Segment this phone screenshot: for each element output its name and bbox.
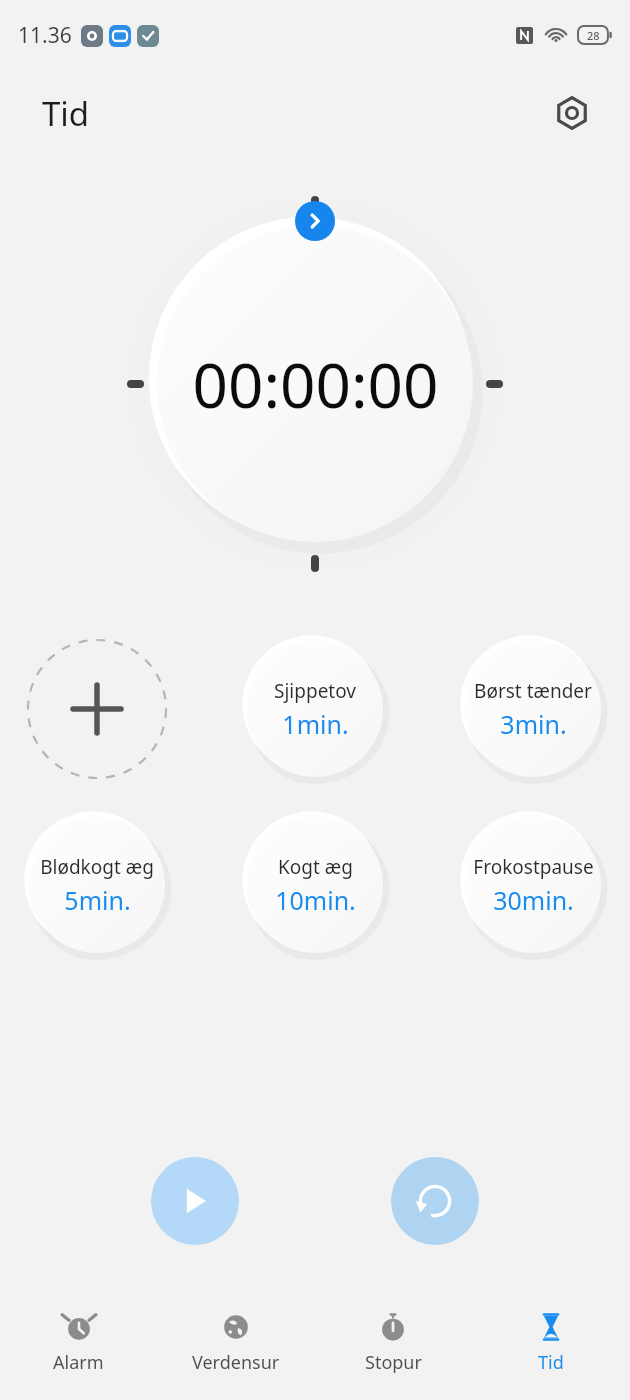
button[interactable]: Reset: [391, 1157, 479, 1245]
button[interactable]: Start: [151, 1157, 239, 1245]
button[interactable]: Børst tænder: [458, 634, 608, 784]
button[interactable]: Blødkogt æg: [22, 810, 172, 960]
button[interactable]: Frokostpause: [458, 810, 608, 960]
button[interactable]: Settings: [548, 89, 596, 137]
staticText: Kogt æg: [278, 854, 353, 880]
staticText: 00:00:00: [192, 342, 439, 426]
button[interactable]: Adjust timer: [295, 201, 335, 241]
staticText: Tid: [538, 1350, 564, 1375]
staticText: 5min.: [64, 883, 131, 917]
staticText: Stopur: [365, 1350, 422, 1375]
staticText: Sjippetov: [274, 678, 356, 704]
button[interactable]: Tid: [472, 1295, 630, 1375]
staticText: Blødkogt æg: [40, 854, 154, 880]
button[interactable]: Verdensur: [157, 1295, 314, 1375]
staticText: 10min.: [275, 883, 356, 917]
button[interactable]: Alarm: [0, 1295, 157, 1375]
button[interactable]: Stopur: [314, 1295, 472, 1375]
staticText: 28: [587, 28, 600, 43]
staticText: 30min.: [493, 883, 574, 917]
staticText: Alarm: [53, 1350, 104, 1375]
staticText: Tid: [42, 91, 90, 136]
staticText: 11.36: [18, 21, 72, 50]
staticText: Frokostpause: [473, 854, 594, 880]
staticText: Verdensur: [192, 1350, 280, 1375]
button[interactable]: Add timer: [22, 634, 172, 784]
staticText: 3min.: [500, 707, 567, 741]
button[interactable]: Kogt æg: [240, 810, 390, 960]
button[interactable]: Sjippetov: [240, 634, 390, 784]
staticText: Børst tænder: [474, 678, 592, 704]
staticText: 1min.: [282, 707, 349, 741]
